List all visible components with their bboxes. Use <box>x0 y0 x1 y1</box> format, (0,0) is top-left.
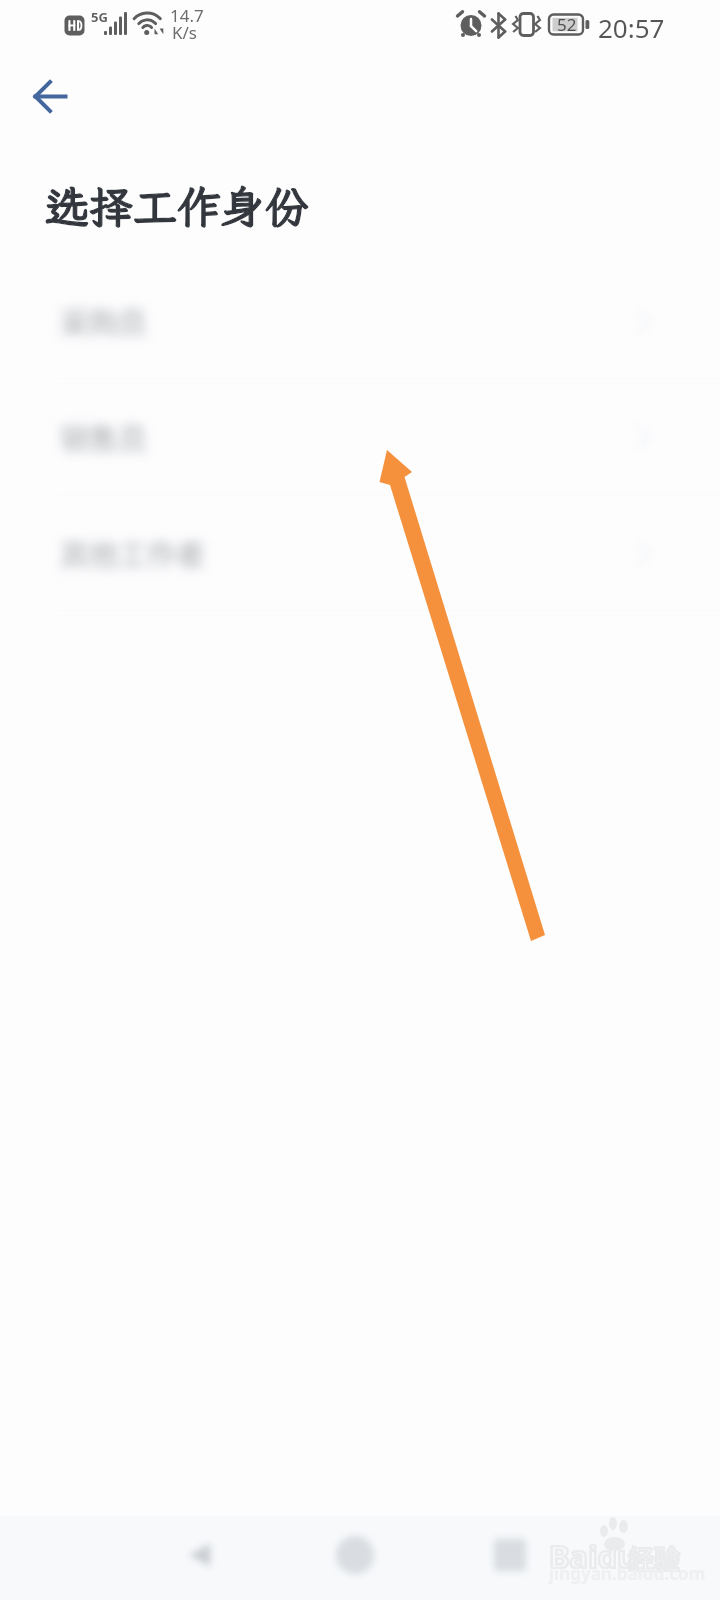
button[interactable]: Home <box>315 1515 395 1595</box>
staticText: 52 <box>557 13 577 36</box>
button[interactable]: Back <box>160 1515 240 1595</box>
staticText: 其他工作者 <box>60 532 206 574</box>
button[interactable]: 销售员 <box>0 379 720 494</box>
staticText: 经验 <box>628 1539 681 1577</box>
staticText: K/s <box>172 21 197 44</box>
staticText: jingyan.baidu.com <box>549 1562 706 1585</box>
staticText: 14.7 <box>170 4 204 27</box>
staticText: 选择工作身份 <box>45 178 309 236</box>
staticText: 选择工作身份 <box>45 178 309 236</box>
staticText: Baidu <box>549 1535 638 1577</box>
staticText: 20:57 <box>598 10 665 45</box>
staticText: 5G <box>91 8 108 26</box>
button[interactable]: 其他工作者 <box>0 495 720 610</box>
staticText: 采购员 <box>60 300 148 342</box>
button[interactable]: 采购员 <box>0 263 720 378</box>
button[interactable]: Recents <box>470 1515 550 1595</box>
staticText: 销售员 <box>60 416 148 458</box>
button[interactable]: Back <box>18 63 84 129</box>
